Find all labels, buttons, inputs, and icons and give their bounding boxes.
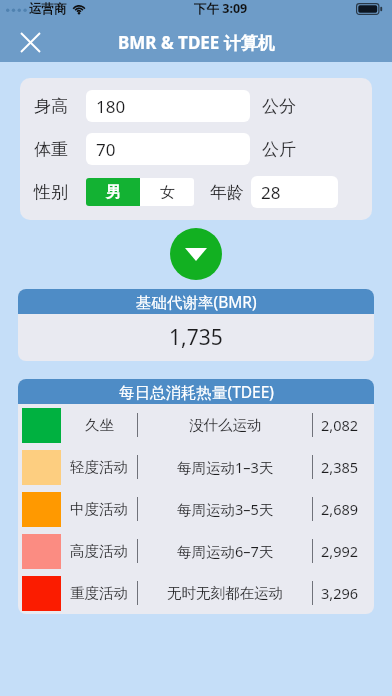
staticText: 重度活动 bbox=[70, 584, 128, 602]
staticText: 身高 bbox=[34, 96, 86, 117]
staticText: 女 bbox=[160, 183, 175, 202]
button[interactable]: 180 bbox=[86, 90, 250, 122]
staticText: 2,385 bbox=[321, 457, 359, 477]
button[interactable]: 重度活动 bbox=[18, 572, 374, 614]
staticText: 无时无刻都在运动 bbox=[167, 584, 283, 602]
staticText: 每周运动3–5天 bbox=[177, 499, 274, 519]
staticText: 高度活动 bbox=[70, 542, 128, 560]
staticText: 基础代谢率(BMR) bbox=[136, 291, 257, 312]
staticText: 70 bbox=[96, 138, 116, 161]
staticText: 2,689 bbox=[321, 499, 359, 519]
staticText: 28 bbox=[261, 181, 281, 204]
staticText: 1,735 bbox=[169, 323, 223, 352]
staticText: 没什么运动 bbox=[189, 416, 262, 434]
staticText: 3,296 bbox=[321, 583, 359, 603]
button[interactable]: 男 bbox=[86, 178, 140, 206]
staticText: 下午 3:09 bbox=[194, 0, 248, 17]
staticText: 180 bbox=[96, 95, 126, 118]
staticText: 性别 bbox=[34, 182, 86, 203]
staticText: 每周运动1–3天 bbox=[177, 457, 274, 477]
staticText: 2,082 bbox=[321, 415, 359, 435]
button[interactable]: Calculate bbox=[170, 228, 222, 280]
button[interactable]: 女 bbox=[140, 178, 194, 206]
button[interactable]: 基础代谢率(BMR) bbox=[18, 289, 374, 361]
staticText: 久坐 bbox=[85, 416, 114, 434]
button[interactable]: 久坐 bbox=[18, 404, 374, 446]
staticText: 运营商 bbox=[29, 1, 67, 17]
staticText: 体重 bbox=[34, 139, 86, 160]
button[interactable]: 中度活动 bbox=[18, 488, 374, 530]
staticText: 公斤 bbox=[262, 139, 296, 160]
staticText: BMR & TDEE 计算机 bbox=[118, 31, 275, 54]
staticText: 年龄 bbox=[210, 182, 244, 203]
button[interactable]: 高度活动 bbox=[18, 530, 374, 572]
staticText: 中度活动 bbox=[70, 500, 128, 518]
staticText: 男 bbox=[106, 183, 121, 202]
button[interactable]: 轻度活动 bbox=[18, 446, 374, 488]
button[interactable]: 28 bbox=[251, 176, 338, 208]
staticText: 2,992 bbox=[321, 541, 359, 561]
button[interactable]: Close bbox=[10, 22, 50, 62]
button[interactable]: 70 bbox=[86, 133, 250, 165]
staticText: 轻度活动 bbox=[70, 458, 128, 476]
staticText: 每周运动6–7天 bbox=[177, 541, 274, 561]
staticText: 每日总消耗热量(TDEE) bbox=[119, 381, 274, 402]
staticText: 公分 bbox=[262, 96, 296, 117]
